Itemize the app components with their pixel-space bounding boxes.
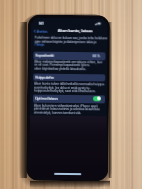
staticText: suorituskykyä. Jos akku ei enää pysty tu… [34,86,91,90]
staticText: Asetus [37,29,48,33]
button[interactable]: Optimized battery charging toggle [93,96,101,101]
staticText: Puhelimen akku on kuluva osa, jonka teho… [35,36,108,40]
staticText: Huipputeho [35,75,54,79]
staticText: Kapasiteetti [35,53,54,57]
button[interactable]: Back to Battery [34,29,47,33]
staticText: huippusuorituskykyä, saat siitä ilmoituk… [34,89,96,93]
button[interactable]: Kapasiteetti [33,52,105,60]
staticText: ajan mittaan käytön ja ikääntymisen taki… [35,40,97,44]
staticText: Akun kunto tukee tällä hetkellä normaali… [34,82,105,86]
staticText: akun käyttöaikaa yhdellä latauksella. [34,67,86,71]
staticText: 88 % [92,53,100,57]
staticText: Akun kunto, lataus [58,28,93,33]
staticText: Akun maksimikapasiteetti verrattuna siih… [34,60,103,64]
staticText: päivittäiset latausrutiinisi ja odottaa … [34,107,100,111]
staticText: viimeistelyä, kunnes tarvitset sitä. [34,111,82,115]
staticText: Akun kulumisen vähentämiseksi iPhone opp… [34,104,98,108]
staticText: Tietoja [34,43,44,47]
staticText: Optimoi lataus [35,96,58,100]
button[interactable]: Huipputeho [33,74,105,81]
button[interactable]: Optimoi lataus [33,95,105,103]
staticText: se oli uusi. Pienempi kapasiteetti lyhen… [34,63,90,67]
staticText: 9:41 [39,22,44,25]
